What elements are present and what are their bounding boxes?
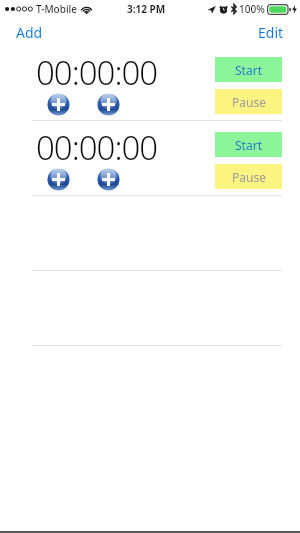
button[interactable]: Add	[0, 19, 59, 46]
staticText: Pause	[232, 94, 266, 110]
button[interactable]: Add minutes	[97, 93, 120, 116]
staticText: Start	[235, 62, 262, 78]
staticText: 00:00:00	[36, 50, 158, 95]
button[interactable]: Add hours	[47, 93, 70, 116]
staticText: T-Mobile	[36, 2, 78, 16]
button[interactable]: Add hours	[47, 168, 70, 191]
staticText: Start	[235, 137, 262, 153]
staticText: Pause	[232, 169, 266, 185]
button[interactable]: Pause	[215, 164, 282, 189]
button[interactable]: Start	[215, 57, 282, 82]
staticText: 00:00:00	[36, 125, 158, 170]
button[interactable]: Pause	[215, 89, 282, 114]
staticText: Add	[16, 23, 43, 42]
staticText: Edit	[258, 23, 284, 42]
staticText: 3:12 PM	[127, 2, 166, 16]
button[interactable]: Edit	[242, 19, 300, 46]
button[interactable]: Add minutes	[97, 168, 120, 191]
staticText: 100%	[239, 2, 265, 16]
button[interactable]: Start	[215, 132, 282, 157]
